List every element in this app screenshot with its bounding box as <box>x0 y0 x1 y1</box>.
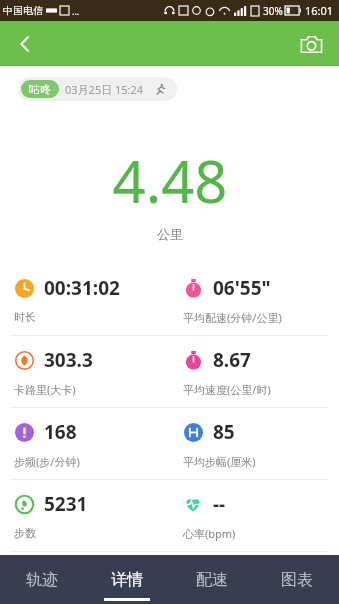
staticText: 303.3 <box>44 347 93 373</box>
staticText: 00:31:02 <box>44 275 120 301</box>
staticText: 5231 <box>44 491 88 517</box>
staticText: -- <box>213 491 226 517</box>
staticText: ... <box>72 5 80 17</box>
staticText: 步数 <box>14 526 36 540</box>
staticText: 平均配速(分钟/公里) <box>183 310 282 325</box>
staticText: 4.48 <box>112 141 228 220</box>
staticText: 平均步幅(厘米) <box>183 454 256 469</box>
staticText: 30% <box>263 4 283 18</box>
staticText: 时长 <box>14 310 36 324</box>
staticText: 85 <box>213 419 235 445</box>
staticText: 步频(步/分钟) <box>14 454 80 469</box>
button[interactable]: 168 <box>0 408 169 479</box>
staticText: 03月25日 15:24 <box>65 82 144 97</box>
staticText: 心率(bpm) <box>183 526 236 541</box>
staticText: 06'55" <box>213 275 271 301</box>
button[interactable]: -- <box>169 480 339 551</box>
button[interactable]: 轨迹 <box>0 555 84 604</box>
staticText: 卡路里(大卡) <box>14 382 76 397</box>
button[interactable]: Camera <box>291 24 331 64</box>
button[interactable]: 详情 <box>84 555 169 604</box>
staticText: 详情 <box>111 570 143 590</box>
button[interactable]: 配速 <box>169 555 254 604</box>
staticText: 配速 <box>196 570 228 590</box>
button[interactable]: 5231 <box>0 480 169 551</box>
button[interactable]: 8.67 <box>169 336 339 407</box>
staticText: 平均速度(公里/时) <box>183 382 271 397</box>
staticText: 16:01 <box>305 3 334 18</box>
button[interactable]: 咕咚 <box>18 77 177 101</box>
button[interactable]: 303.3 <box>0 336 169 407</box>
button[interactable]: 图表 <box>254 555 339 604</box>
staticText: 公里 <box>157 226 183 242</box>
staticText: 轨迹 <box>26 570 58 590</box>
staticText: 168 <box>44 419 77 445</box>
button[interactable]: 85 <box>169 408 339 479</box>
staticText: 8.67 <box>213 347 251 373</box>
button[interactable]: 06'55" <box>169 264 339 335</box>
button[interactable]: Back <box>6 25 44 63</box>
button[interactable]: 00:31:02 <box>0 264 169 335</box>
staticText: 咕咚 <box>29 82 51 96</box>
staticText: 图表 <box>281 570 313 590</box>
staticText: 中国电信 <box>3 4 43 17</box>
